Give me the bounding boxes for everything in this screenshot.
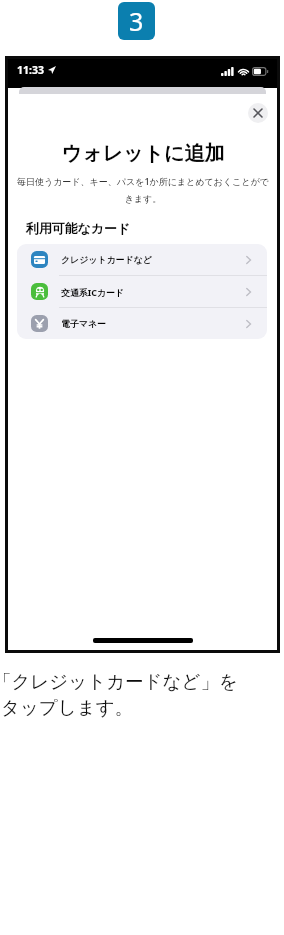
staticText: タップします。	[1, 696, 134, 719]
staticText: ウォレットに追加	[7, 141, 279, 166]
staticText: 利用可能なカード	[26, 221, 131, 237]
button[interactable]: 交通系ICカード	[17, 276, 267, 307]
staticText: クレジットカードなど	[61, 254, 152, 265]
staticText: 毎日使うカード、キー、パスを1か所にまとめておくことがで きます。	[11, 175, 275, 205]
button[interactable]: 電子マネー	[17, 308, 267, 339]
staticText: 「クレジットカードなど」を	[0, 670, 238, 693]
button[interactable]: クレジットカードなど	[17, 244, 267, 275]
staticText: 11:33	[17, 63, 44, 77]
staticText: 3	[129, 4, 144, 38]
staticText: 交通系ICカード	[61, 286, 124, 298]
staticText: 電子マネー	[61, 318, 106, 329]
button[interactable]: Close	[248, 103, 268, 123]
